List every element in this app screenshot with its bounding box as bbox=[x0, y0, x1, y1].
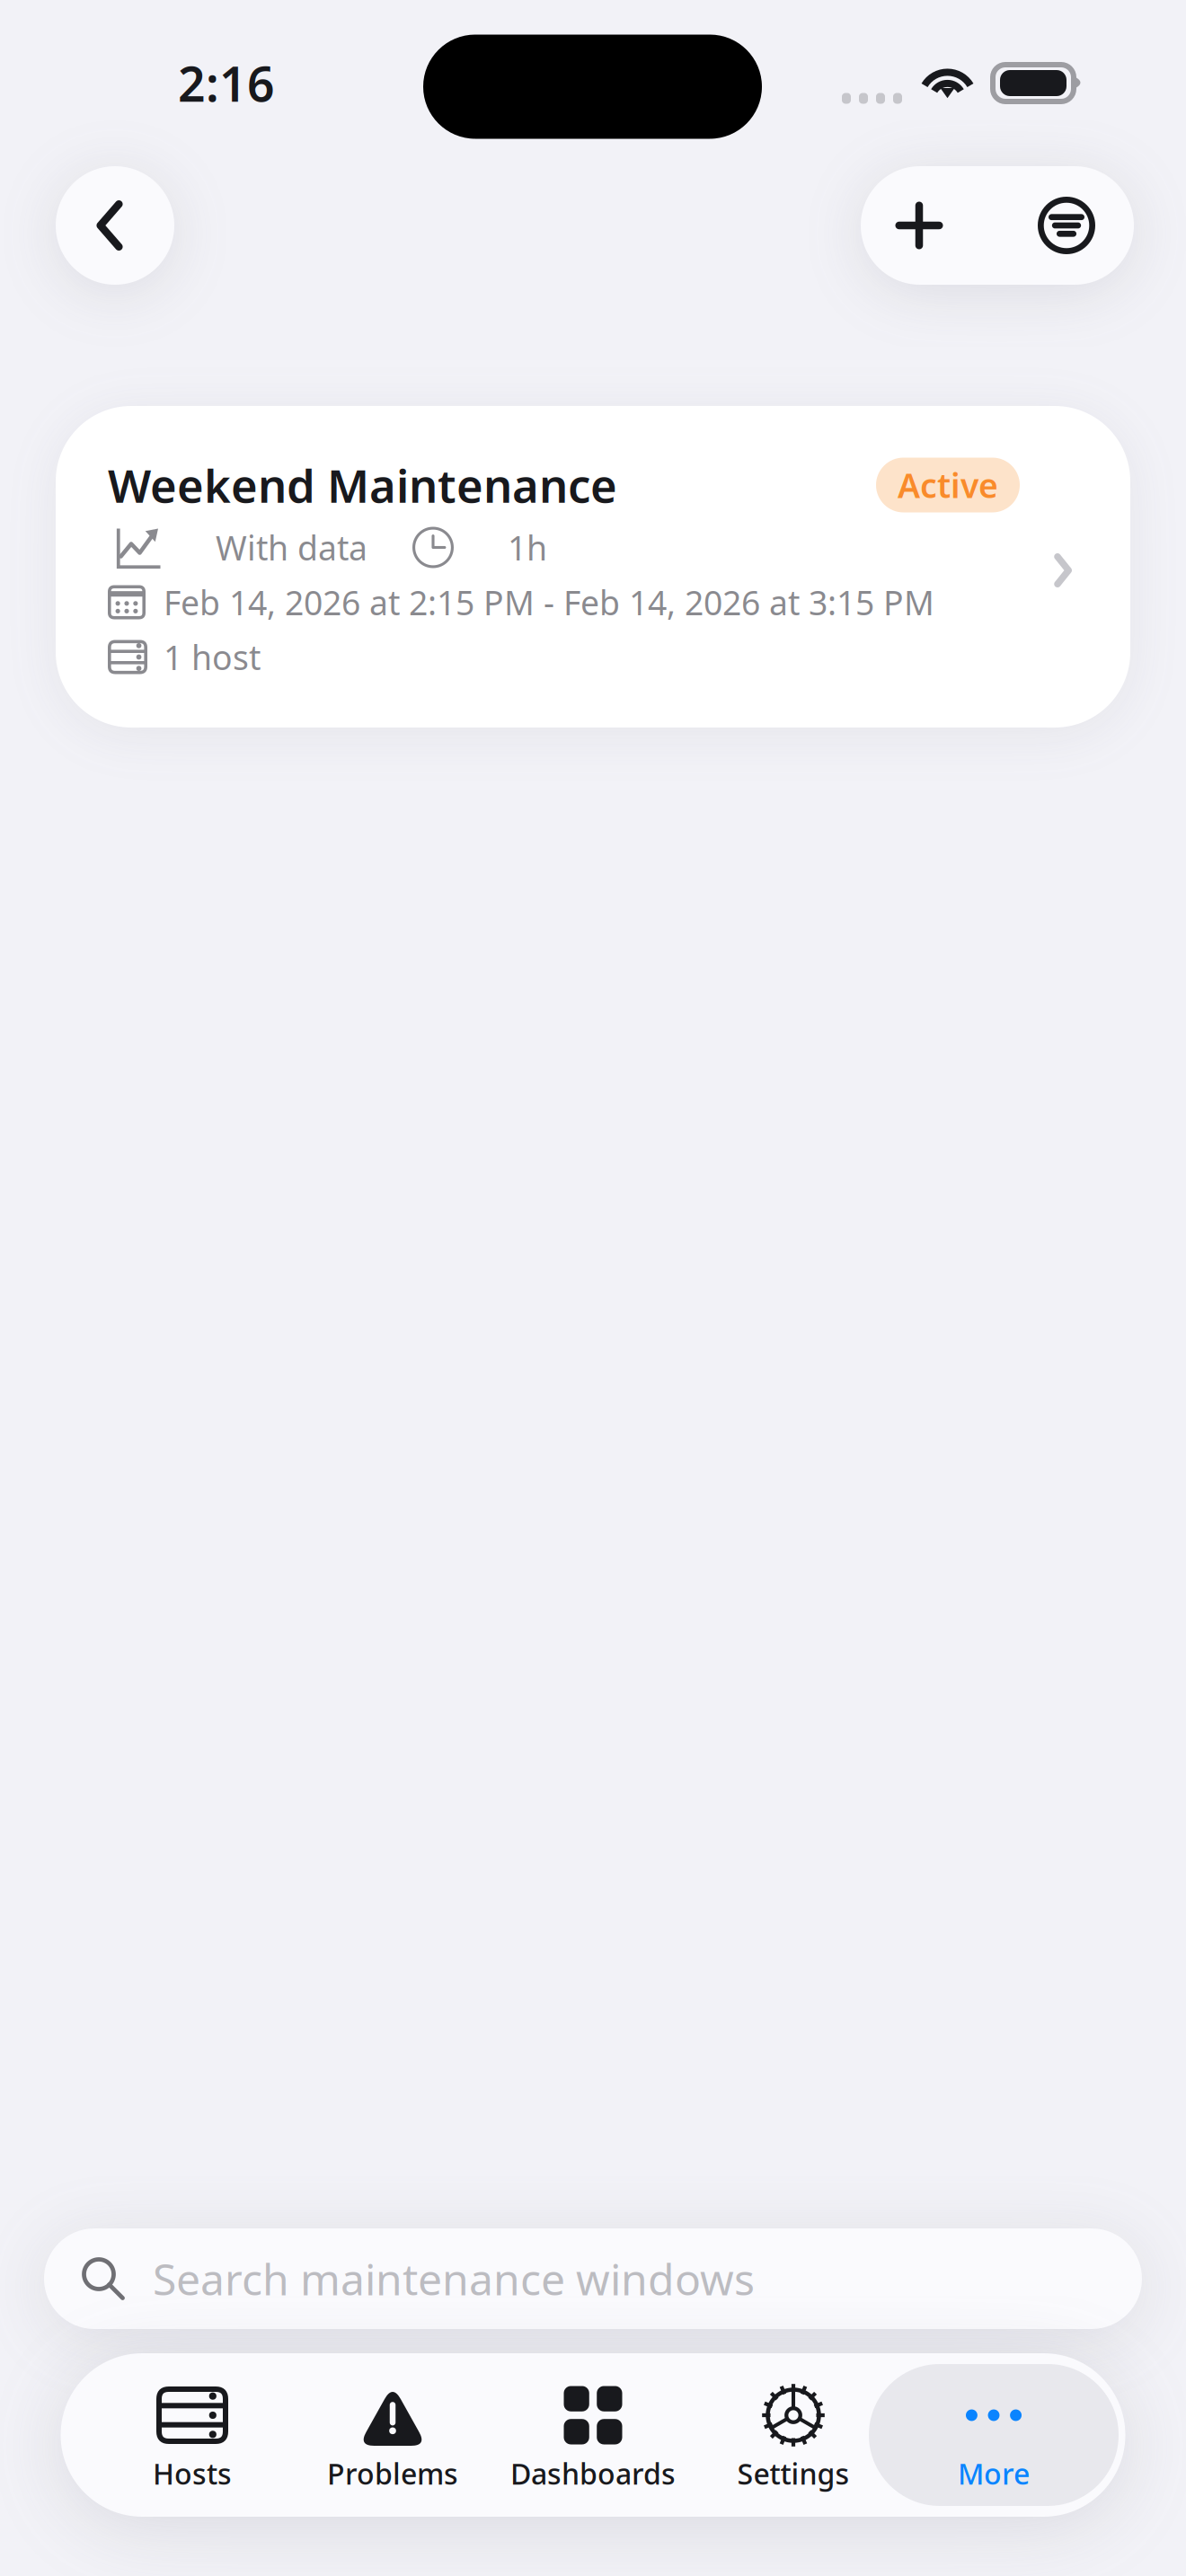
button[interactable]: Search maintenance windows bbox=[44, 2228, 1142, 2329]
staticText: 2:16 bbox=[178, 51, 275, 115]
staticText: Hosts bbox=[153, 2454, 232, 2492]
staticText: Problems bbox=[327, 2454, 458, 2492]
staticText: More bbox=[958, 2454, 1030, 2492]
button[interactable]: Problems bbox=[292, 2353, 493, 2517]
button[interactable]: Settings bbox=[693, 2353, 894, 2517]
staticText: 1 host bbox=[164, 635, 261, 679]
staticText: Search maintenance windows bbox=[153, 2250, 755, 2307]
staticText: Feb 14, 2026 at 2:15 PM - Feb 14, 2026 a… bbox=[164, 580, 934, 625]
staticText: 1h bbox=[508, 525, 547, 570]
staticText: Settings bbox=[737, 2454, 850, 2492]
staticText: Weekend Maintenance bbox=[108, 455, 617, 515]
button[interactable]: More bbox=[894, 2353, 1094, 2517]
button[interactable]: Add maintenance window bbox=[861, 166, 994, 285]
staticText: Dashboards bbox=[510, 2454, 676, 2492]
button[interactable]: Dashboards bbox=[493, 2353, 693, 2517]
button[interactable]: Filter and sort bbox=[994, 166, 1134, 285]
button[interactable]: Hosts bbox=[92, 2353, 292, 2517]
button[interactable]: Back bbox=[56, 166, 174, 285]
button[interactable]: Weekend Maintenance bbox=[56, 406, 1130, 728]
staticText: Active bbox=[898, 463, 998, 507]
staticText: With data bbox=[216, 525, 367, 570]
